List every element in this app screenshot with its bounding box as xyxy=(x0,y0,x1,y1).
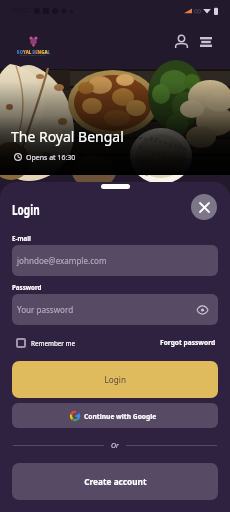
button[interactable]: Close xyxy=(191,194,217,220)
staticText: Opens at 16:30 xyxy=(26,152,76,162)
button[interactable]: Show password xyxy=(195,303,209,317)
staticText: johndoe@example.com xyxy=(17,255,107,267)
staticText: ROYAL BENGAL xyxy=(17,48,50,56)
staticText: Or xyxy=(111,441,119,450)
staticText: Your password xyxy=(17,304,73,316)
button[interactable]: Account xyxy=(172,32,191,51)
button[interactable]: Your password xyxy=(12,294,218,325)
staticText: Forgot password xyxy=(160,337,215,347)
staticText: Remember me xyxy=(31,338,76,348)
button[interactable]: Continue with Google xyxy=(12,403,218,428)
button[interactable]: Remember me xyxy=(16,338,82,348)
staticText: Create account xyxy=(84,476,147,488)
button[interactable]: Menu xyxy=(196,32,215,51)
button[interactable]: johndoe@example.com xyxy=(12,245,218,276)
staticText: INDIAN RESTAURANT xyxy=(20,53,47,56)
staticText: E-mail xyxy=(12,233,31,243)
staticText: Password xyxy=(12,282,42,292)
staticText: The Royal Bengal xyxy=(11,127,124,146)
button[interactable]: Forgot password xyxy=(160,337,220,347)
staticText: Login xyxy=(12,201,40,219)
button[interactable]: Login xyxy=(12,361,218,398)
button[interactable]: Create account xyxy=(12,463,218,500)
staticText: Continue with Google xyxy=(84,411,157,421)
staticText: Login xyxy=(105,374,126,386)
